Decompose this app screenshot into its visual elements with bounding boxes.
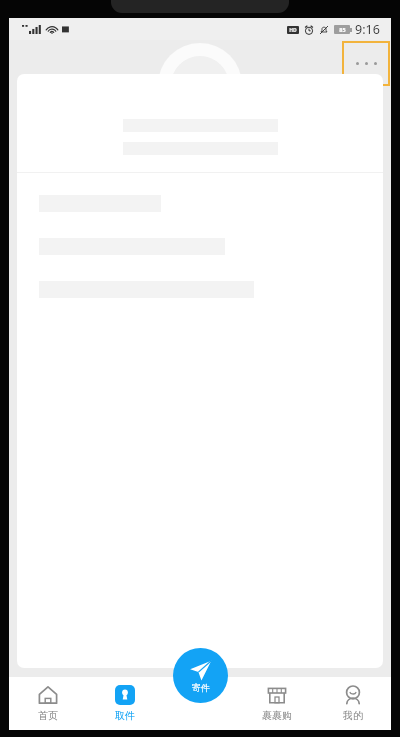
staticText: HD [289,27,297,34]
button[interactable]: Pickup [86,677,163,730]
staticText: 首页 [38,709,58,722]
staticText: 9:16 [355,21,380,38]
staticText: 寄件 [192,682,210,693]
button[interactable]: Shop [239,677,315,730]
button[interactable]: Home [9,677,86,730]
staticText: 85 [339,26,346,33]
staticText: 我的 [343,709,363,722]
button[interactable]: Profile [315,677,391,730]
staticText: 裹裹购 [262,709,292,722]
staticText: 取件 [115,709,135,722]
button[interactable]: More options [342,41,390,86]
button[interactable]: 寄件 [173,648,228,703]
